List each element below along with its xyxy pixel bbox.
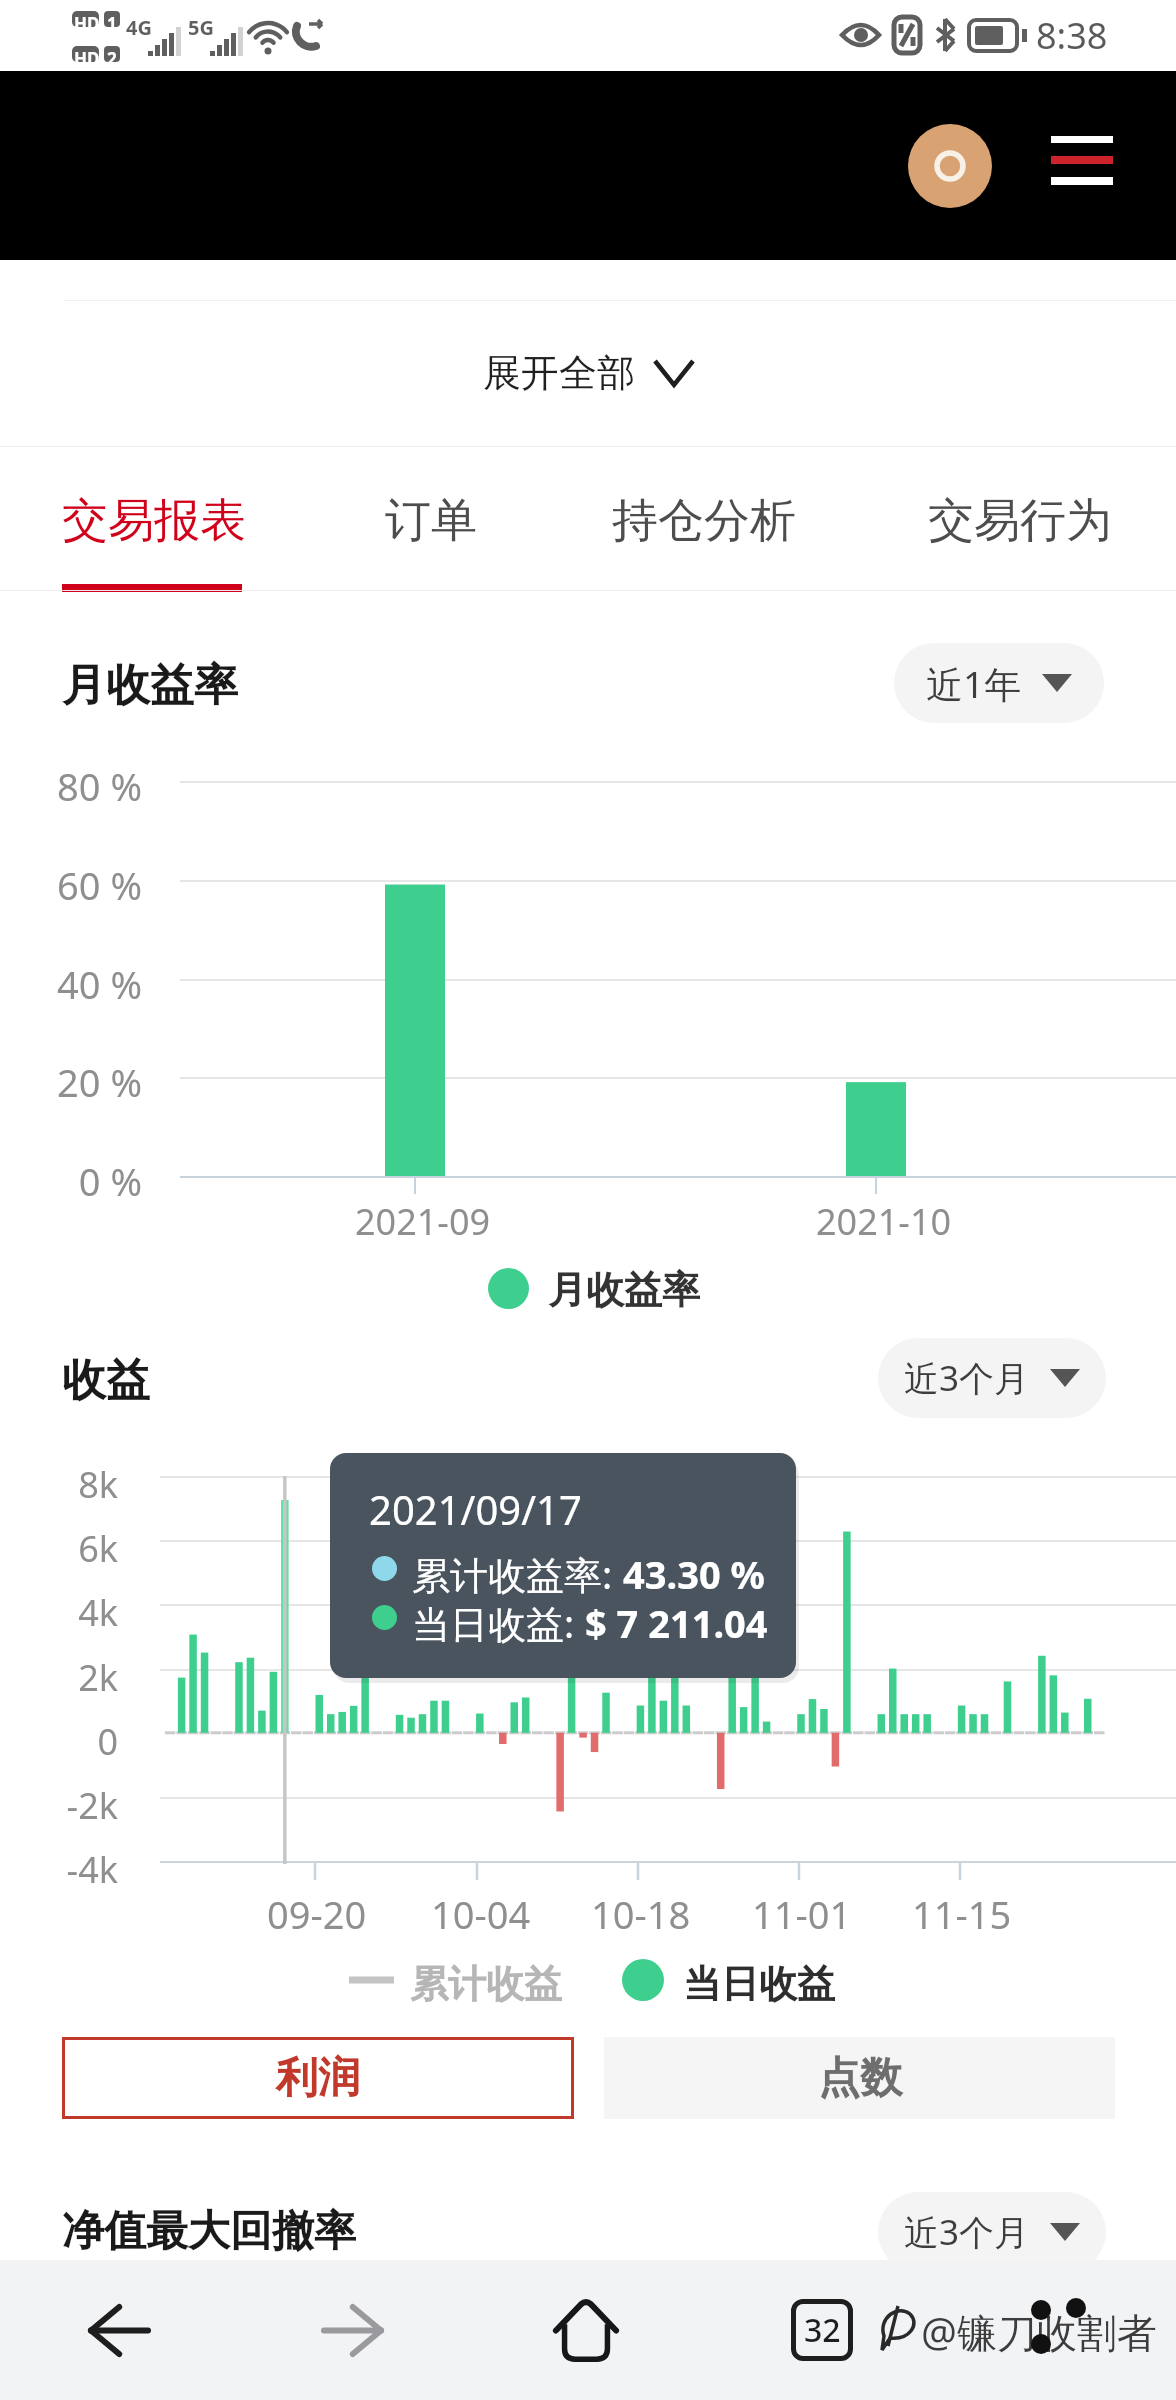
staticText: 2 xyxy=(107,47,117,70)
staticText: 40 % xyxy=(32,958,142,1010)
staticText: 收益 xyxy=(62,1353,150,1408)
staticText: 6k xyxy=(8,1524,118,1573)
staticText: HD xyxy=(74,12,100,35)
staticText: 月收益率 xyxy=(548,1266,700,1314)
button[interactable]: 近3个月 xyxy=(878,1338,1106,1418)
staticText: 点数 xyxy=(818,2052,902,2105)
button[interactable]: Home xyxy=(516,2272,656,2388)
staticText: 09-20 xyxy=(267,1888,367,1940)
staticText: 交易报表 xyxy=(62,492,246,550)
staticText: 持仓分析 xyxy=(612,492,796,550)
staticText: -4k xyxy=(8,1845,118,1894)
staticText: 32 xyxy=(804,2308,841,2352)
button[interactable]: 利润 xyxy=(62,2037,574,2119)
staticText: 80 % xyxy=(32,760,142,812)
staticText: 订单 xyxy=(385,492,477,550)
staticText: 20 % xyxy=(32,1056,142,1108)
staticText: $ 7 211.04 xyxy=(585,1597,768,1649)
staticText: 0 % xyxy=(32,1155,142,1207)
staticText: 累计收益率: xyxy=(412,1548,623,1600)
staticText: 8k xyxy=(8,1460,118,1509)
staticText: 4G xyxy=(126,14,152,41)
staticText: 5G xyxy=(188,14,214,41)
staticText: 11-01 xyxy=(752,1888,852,1940)
staticText: 当日收益 xyxy=(683,1960,835,2008)
staticText: -2k xyxy=(8,1781,118,1830)
staticText: 近3个月 xyxy=(904,1354,1030,1402)
staticText: 2021-09 xyxy=(355,1197,491,1246)
button[interactable]: 近3个月 xyxy=(878,2192,1106,2272)
button[interactable]: Menu xyxy=(1036,126,1128,206)
staticText: 1 xyxy=(107,12,117,35)
staticText: 利润 xyxy=(276,2052,360,2105)
button[interactable]: Account xyxy=(908,124,992,208)
button[interactable]: 交易行为 xyxy=(928,492,1112,550)
staticText: 累计收益 xyxy=(410,1960,562,2008)
staticText: 2021-10 xyxy=(816,1197,952,1246)
staticText: HD xyxy=(74,47,100,70)
staticText: 近1年 xyxy=(926,658,1022,709)
button[interactable]: Tabs xyxy=(752,2272,892,2388)
button[interactable]: Back xyxy=(48,2272,188,2388)
staticText: 当日收益: xyxy=(412,1597,585,1649)
staticText: 8:38 xyxy=(1036,11,1108,60)
staticText: 10-04 xyxy=(431,1888,531,1940)
staticText: 60 % xyxy=(32,859,142,911)
staticText: 43.30 % xyxy=(623,1548,765,1600)
staticText: 4k xyxy=(8,1588,118,1637)
staticText: 净值最大回撤率 xyxy=(62,2205,356,2258)
staticText: 0 xyxy=(8,1717,118,1766)
button[interactable]: 展开全部 xyxy=(0,301,1176,445)
staticText: 展开全部 xyxy=(483,349,635,397)
staticText: 月收益率 xyxy=(62,658,238,713)
staticText: 交易行为 xyxy=(928,492,1112,550)
staticText: 近3个月 xyxy=(904,2208,1030,2256)
staticText: 11-15 xyxy=(912,1888,1012,1940)
button[interactable]: 订单 xyxy=(385,492,477,550)
button[interactable]: 点数 xyxy=(604,2037,1115,2119)
staticText: @镰刀收割者 xyxy=(921,2304,1157,2359)
button[interactable]: 交易报表 xyxy=(62,492,246,550)
staticText: 2k xyxy=(8,1653,118,1702)
staticText: 2021/09/17 xyxy=(369,1482,582,1536)
button[interactable]: Forward xyxy=(284,2272,424,2388)
button[interactable]: 持仓分析 xyxy=(612,492,796,550)
staticText: 10-18 xyxy=(591,1888,691,1940)
button[interactable]: 近1年 xyxy=(894,643,1104,723)
